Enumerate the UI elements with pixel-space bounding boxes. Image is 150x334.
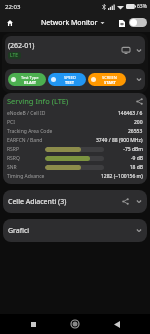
staticText: 146463 / 6 <box>118 110 143 117</box>
button[interactable]: Home <box>66 315 84 333</box>
button[interactable]: Home <box>0 13 19 32</box>
button[interactable]: SPEED <box>48 73 86 86</box>
button[interactable]: Back <box>108 315 126 333</box>
staticText: eNodeB / Cell ID <box>7 110 46 117</box>
staticText: SCREEN <box>102 75 117 80</box>
staticText: RSRQ <box>7 155 20 162</box>
staticText: 26553 <box>128 128 143 135</box>
button[interactable]: Serving Info (LTE) <box>3 93 147 109</box>
staticText: Celle Adiacenti (3) <box>8 197 67 207</box>
staticText: EARFCN / Band <box>7 137 43 144</box>
staticText: -75 dBm <box>123 146 143 153</box>
button[interactable]: Test Type <box>8 73 46 86</box>
staticText: -9 dB <box>130 155 143 162</box>
staticText: TEST <box>65 80 75 85</box>
button[interactable]: SIM card <box>115 16 129 30</box>
staticText: 63% <box>137 3 147 10</box>
staticText: Serving Info (LTE) <box>7 96 69 106</box>
staticText: Grafici <box>8 226 30 236</box>
staticText: Tracking Area Code <box>7 128 53 135</box>
staticText: 200 <box>134 119 143 126</box>
staticText: 18 dB <box>129 164 143 171</box>
staticText: LTE <box>10 52 19 59</box>
staticText: Test Type <box>21 75 39 80</box>
staticText: Timing Advance <box>7 173 45 180</box>
staticText: 22:03 <box>5 3 21 11</box>
button[interactable]: Celle Adiacenti (3) <box>3 190 147 213</box>
staticText: 1282 (~100156 m) <box>101 173 143 180</box>
button[interactable]: Toggle monitoring <box>129 18 147 27</box>
button[interactable]: SCREEN <box>88 73 126 86</box>
staticText: 3749 / 88 (900 MHz) <box>96 137 143 144</box>
staticText: PCI <box>7 119 15 126</box>
staticText: START <box>104 80 116 85</box>
button[interactable]: Grafici <box>3 219 147 242</box>
staticText: SNR <box>7 164 17 171</box>
button[interactable]: (262-01) <box>5 36 145 64</box>
staticText: BLAST <box>24 80 37 85</box>
button[interactable]: Recents <box>24 315 42 333</box>
staticText: Network Monitor <box>41 18 98 28</box>
staticText: (262-01) <box>8 41 35 51</box>
staticText: RSRP <box>7 146 19 153</box>
staticText: SPEED <box>64 75 76 80</box>
